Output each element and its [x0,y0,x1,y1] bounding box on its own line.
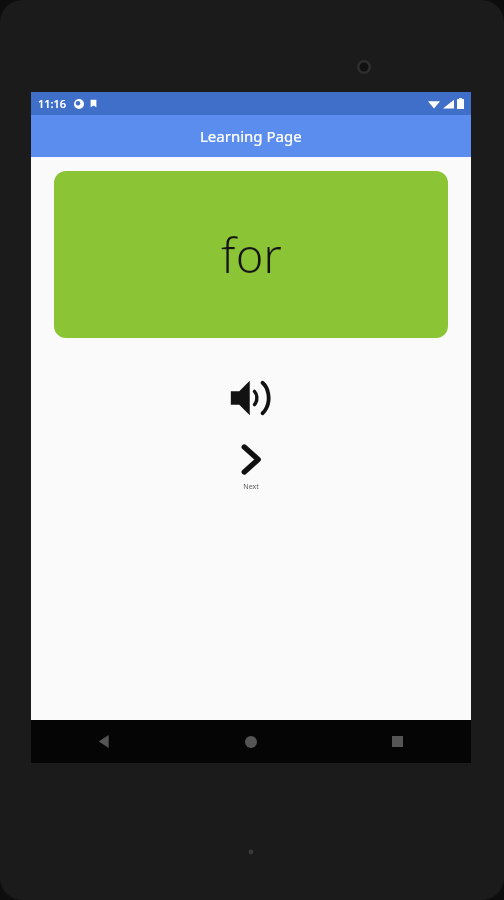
staticText: Next [243,482,259,492]
staticText: 11:16 [38,96,67,111]
button[interactable]: Recent apps [324,720,471,763]
button[interactable]: Play pronunciation [229,376,273,420]
staticText: Learning Page [200,126,302,146]
button[interactable]: Home [177,720,324,763]
button[interactable]: for [54,171,448,338]
button[interactable]: Back [31,720,177,763]
staticText: for [221,223,282,287]
button[interactable]: Next [229,442,273,494]
